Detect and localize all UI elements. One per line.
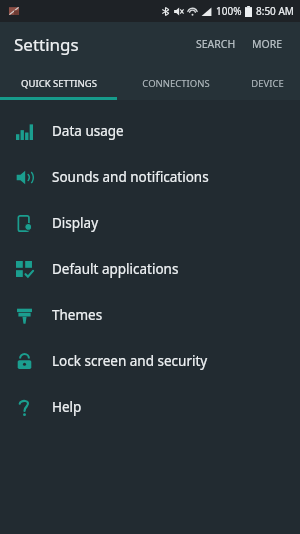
staticText: Help	[52, 398, 82, 416]
button[interactable]: SEARCH	[191, 31, 241, 57]
staticText: Sounds and notifications	[52, 168, 209, 186]
staticText: Lock screen and security	[52, 352, 208, 370]
button[interactable]: CONNECTIONS	[117, 66, 234, 100]
button[interactable]: DEVICE	[234, 66, 300, 100]
staticText: CONNECTIONS	[142, 77, 210, 90]
staticText: MORE	[252, 37, 283, 51]
button[interactable]: MORE	[247, 31, 288, 57]
button[interactable]: Sounds and notifications	[0, 154, 300, 200]
button[interactable]: Help	[0, 384, 300, 430]
staticText: Themes	[52, 306, 103, 324]
button[interactable]: Data usage	[0, 108, 300, 154]
staticText: SEARCH	[196, 37, 236, 51]
staticText: Data usage	[52, 122, 124, 140]
button[interactable]: QUICK SETTINGS	[0, 66, 117, 100]
button[interactable]: Default applications	[0, 246, 300, 292]
button[interactable]: Lock screen and security	[0, 338, 300, 384]
button[interactable]: Themes	[0, 292, 300, 338]
staticText: 100%	[216, 4, 242, 18]
staticText: Display	[52, 214, 99, 232]
staticText: Settings	[14, 33, 79, 56]
staticText: DEVICE	[251, 77, 284, 90]
staticText: 8:50 AM	[256, 4, 294, 18]
button[interactable]: Display	[0, 200, 300, 246]
staticText: QUICK SETTINGS	[21, 77, 97, 90]
staticText: Default applications	[52, 260, 179, 278]
